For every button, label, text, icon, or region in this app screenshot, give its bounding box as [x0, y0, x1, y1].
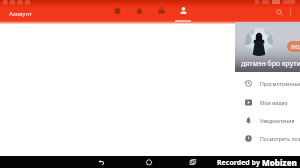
staticText: Мои видео: [260, 99, 288, 106]
staticText: Посмотреть поз: [260, 135, 300, 142]
button[interactable]: ПОДП: [287, 41, 300, 52]
button[interactable]: Мои видео: [235, 93, 300, 111]
staticText: ПОДП: [291, 43, 300, 50]
button[interactable]: Уведомления: [235, 111, 300, 129]
button[interactable]: Home: [143, 156, 155, 168]
button[interactable]: Channel avatar: [245, 28, 273, 56]
button[interactable]: Просмотренные: [235, 74, 300, 92]
button[interactable]: Recents: [187, 156, 199, 168]
button[interactable]: More options: [283, 5, 297, 19]
staticText: Аккаунт: [9, 10, 32, 18]
staticText: Mobizen: [262, 157, 297, 168]
button[interactable]: Trending: [132, 3, 146, 17]
button[interactable]: Account: [176, 3, 190, 17]
staticText: Уведомления: [260, 117, 295, 124]
staticText: Recorded by: [217, 158, 262, 168]
button[interactable]: Back: [95, 156, 107, 168]
button[interactable]: дятмэн бро крути: [235, 56, 300, 72]
button[interactable]: Home: [110, 3, 124, 17]
button[interactable]: Посмотреть поз: [235, 129, 300, 147]
staticText: Просмотренные: [260, 80, 300, 87]
staticText: дятмэн бро крути: [241, 59, 300, 69]
button[interactable]: Subscriptions: [154, 3, 168, 17]
button[interactable]: Search: [272, 5, 286, 19]
